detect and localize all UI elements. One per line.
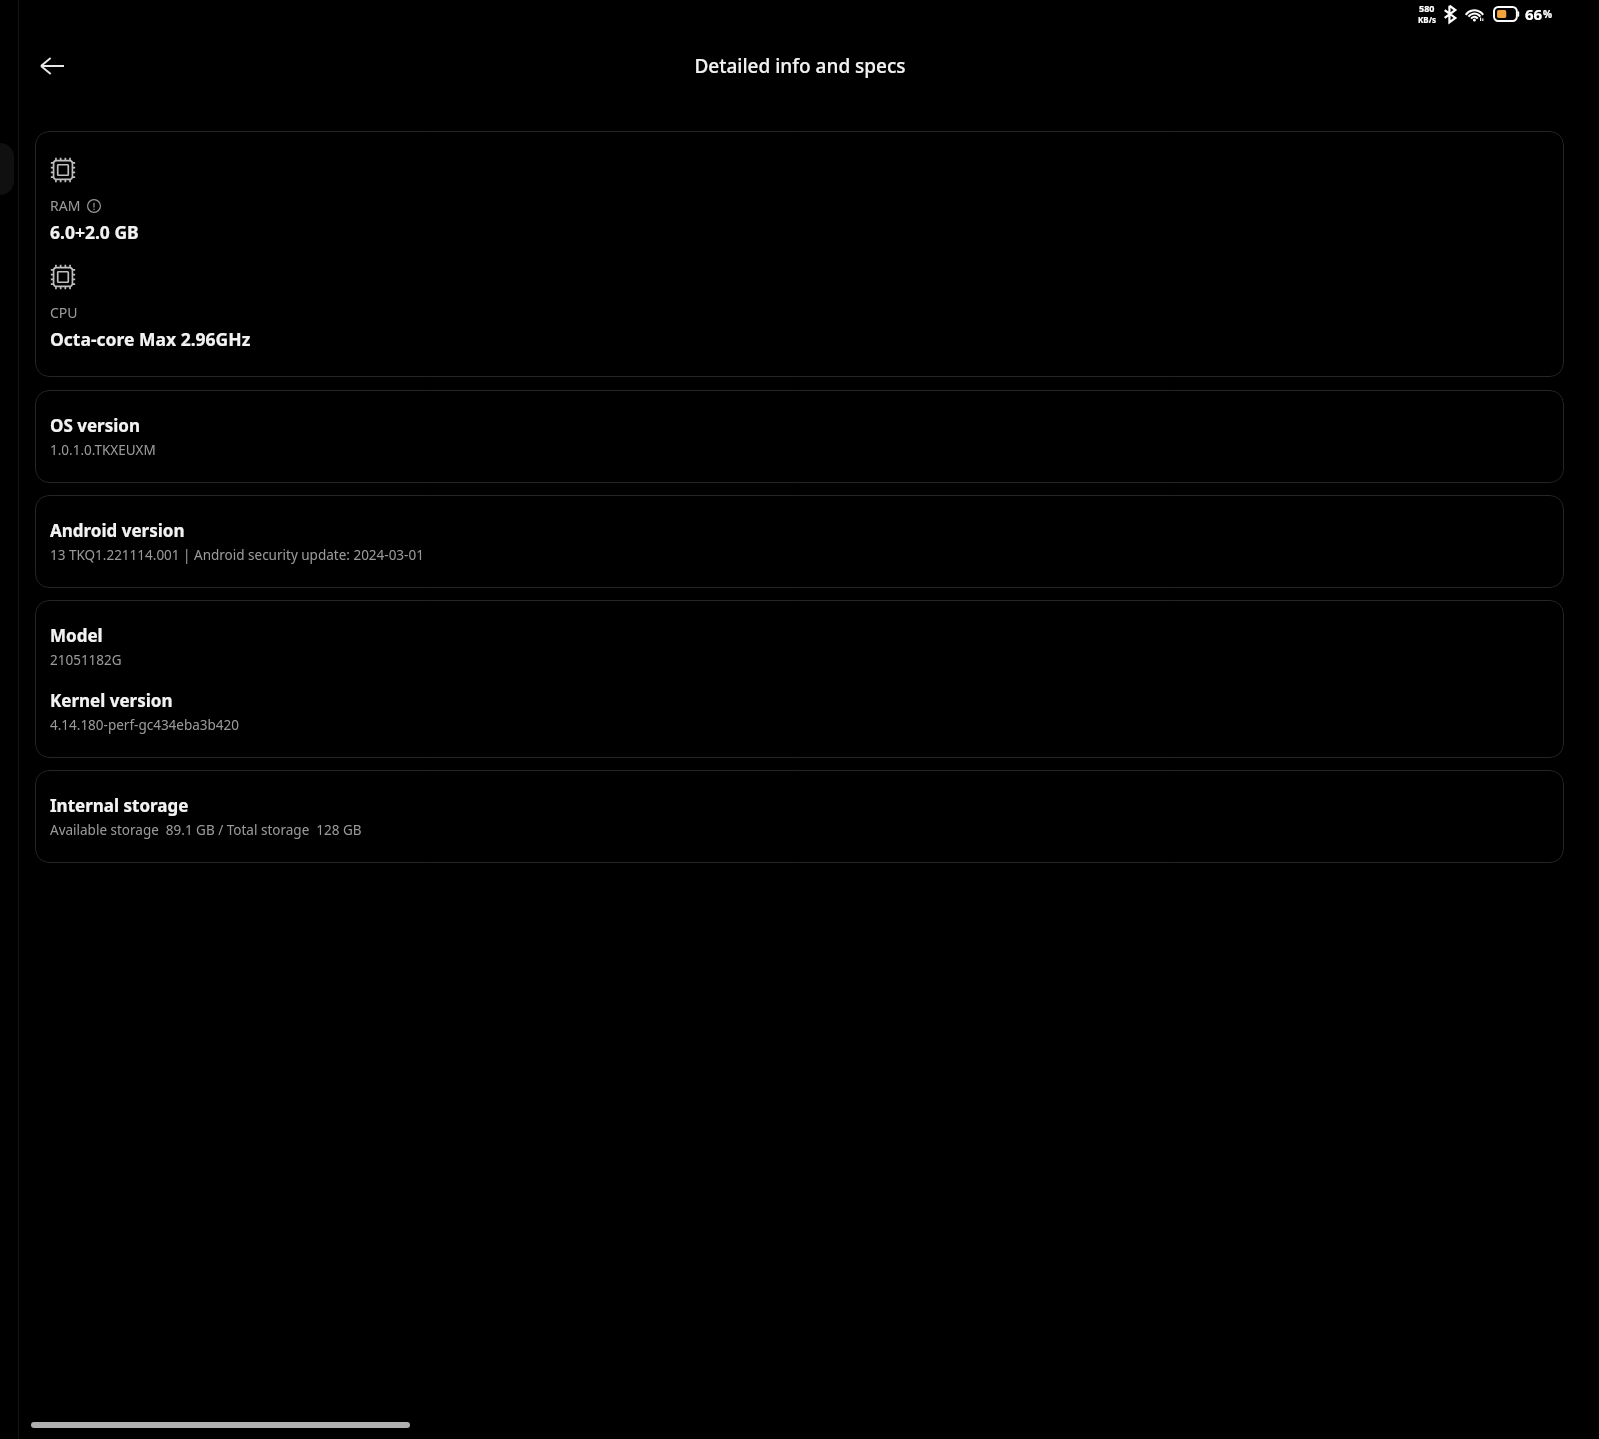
staticText: 580: [1419, 2, 1435, 14]
button[interactable]: Back: [28, 42, 76, 90]
staticText: 6.0+2.0 GB: [50, 220, 139, 244]
button[interactable]: OS version: [35, 390, 1564, 483]
button[interactable]: RAM: [35, 131, 1564, 377]
staticText: 21051182G: [50, 651, 122, 669]
staticText: KB/s: [1418, 14, 1436, 25]
staticText: 66: [1525, 4, 1543, 24]
staticText: Internal storage: [50, 794, 189, 817]
staticText: Octa-core Max 2.96GHz: [50, 327, 251, 351]
button[interactable]: Model: [35, 600, 1564, 758]
staticText: OS version: [50, 414, 140, 437]
staticText: RAM: [50, 196, 81, 215]
staticText: 13 TKQ1.221114.001 | Android security up…: [50, 546, 424, 564]
staticText: Detailed info and specs: [694, 53, 906, 79]
staticText: 4.14.180-perf-gc434eba3b420: [50, 716, 240, 734]
staticText: 1.0.1.0.TKXEUXM: [50, 441, 156, 459]
staticText: Android version: [50, 519, 185, 542]
staticText: Model: [50, 624, 103, 647]
staticText: Available storage 89.1 GB / Total storag…: [50, 821, 362, 839]
button[interactable]: Android version: [35, 495, 1564, 588]
staticText: %: [1543, 7, 1553, 21]
button[interactable]: Internal storage: [35, 770, 1564, 863]
staticText: CPU: [50, 303, 78, 322]
staticText: Kernel version: [50, 689, 173, 712]
